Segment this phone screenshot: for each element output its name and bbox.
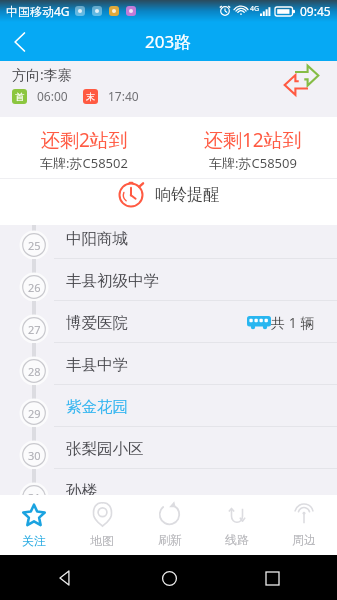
staticText: 周边 bbox=[292, 532, 316, 547]
button[interactable]: 28 bbox=[0, 343, 337, 385]
staticText: 还剩12站到 bbox=[204, 127, 302, 153]
staticText: 首 bbox=[15, 91, 24, 102]
button[interactable]: 25 bbox=[0, 225, 337, 259]
staticText: 25 bbox=[28, 238, 41, 253]
button[interactable]: 周边 bbox=[270, 495, 337, 555]
staticText: 博爱医院 bbox=[66, 313, 128, 333]
button[interactable]: 27 bbox=[0, 301, 337, 343]
button[interactable]: 还剩12站到 bbox=[168, 121, 337, 178]
staticText: 中国移动4G bbox=[6, 3, 70, 19]
staticText: 17:40 bbox=[108, 88, 139, 104]
staticText: 地图 bbox=[90, 533, 114, 548]
button[interactable]: 31 bbox=[0, 469, 337, 495]
button[interactable]: 地图 bbox=[68, 495, 136, 555]
staticText: 末 bbox=[86, 91, 95, 102]
staticText: 丰县中学 bbox=[66, 355, 128, 375]
staticText: 09:45 bbox=[300, 3, 331, 19]
staticText: 203路 bbox=[145, 30, 192, 53]
button[interactable]: Switch direction bbox=[281, 61, 321, 100]
staticText: 28 bbox=[28, 364, 41, 379]
staticText: 26 bbox=[28, 280, 41, 295]
staticText: 4G bbox=[250, 4, 260, 14]
button[interactable]: 响铃提醒 bbox=[0, 179, 337, 211]
staticText: 06:00 bbox=[37, 88, 68, 104]
staticText: 丰县初级中学 bbox=[66, 271, 159, 291]
button[interactable]: Home bbox=[154, 563, 184, 593]
staticText: 29 bbox=[28, 406, 41, 421]
staticText: 中阳商城 bbox=[66, 229, 128, 249]
button[interactable]: Back bbox=[0, 22, 38, 61]
staticText: 30 bbox=[28, 448, 41, 463]
button[interactable]: 刷新 bbox=[136, 495, 203, 555]
button[interactable]: 30 bbox=[0, 427, 337, 469]
staticText: 还剩2站到 bbox=[41, 127, 128, 153]
staticText: 27 bbox=[28, 322, 41, 337]
staticText: 方向:李寨 bbox=[12, 65, 72, 84]
staticText: 31 bbox=[28, 490, 41, 495]
staticText: 线路 bbox=[225, 532, 249, 547]
staticText: 张梨园小区 bbox=[66, 439, 144, 459]
staticText: 刷新 bbox=[158, 532, 182, 547]
button[interactable]: Back bbox=[50, 563, 80, 593]
staticText: 车牌:苏C58502 bbox=[40, 154, 128, 172]
staticText: 车牌:苏C58509 bbox=[209, 154, 297, 172]
button[interactable]: 还剩2站到 bbox=[0, 121, 168, 178]
staticText: 关注 bbox=[22, 533, 46, 548]
staticText: 孙楼 bbox=[66, 481, 97, 495]
staticText: 共 1 辆 bbox=[271, 313, 315, 332]
button[interactable]: 26 bbox=[0, 259, 337, 301]
button[interactable]: 关注 bbox=[0, 495, 68, 555]
staticText: 响铃提醒 bbox=[155, 185, 219, 205]
button[interactable]: Recents bbox=[257, 563, 287, 593]
staticText: 紫金花园 bbox=[66, 397, 128, 417]
button[interactable]: 线路 bbox=[203, 495, 270, 555]
button[interactable]: 29 bbox=[0, 385, 337, 427]
